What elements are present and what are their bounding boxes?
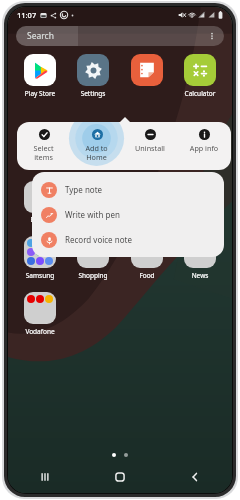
button[interactable]: [121, 53, 173, 98]
button[interactable]: App info: [177, 122, 231, 170]
button[interactable]: Home: [82, 465, 157, 489]
button[interactable]: Settings: [67, 53, 119, 98]
staticText: Record voice note: [65, 234, 132, 245]
staticText: Vodafone: [14, 327, 66, 336]
staticText: Search: [27, 30, 54, 42]
button[interactable]: Write with pen: [32, 202, 224, 227]
button[interactable]: More options: [207, 31, 217, 41]
staticText: Uninstall: [123, 143, 177, 153]
button[interactable]: Google: [174, 181, 226, 224]
button[interactable]: Select items: [17, 122, 70, 170]
staticText: Settings: [67, 89, 119, 98]
staticText: App info: [177, 143, 231, 153]
button[interactable]: Type note: [32, 177, 224, 202]
staticText: 11:07: [17, 10, 37, 20]
staticText: Write with pen: [65, 209, 120, 220]
button[interactable]: Shopping: [67, 234, 119, 280]
button[interactable]: 1: [174, 234, 226, 280]
staticText: Samsung: [14, 271, 66, 280]
staticText: Play Store: [14, 89, 66, 98]
button[interactable]: Add to Home: [70, 122, 123, 170]
staticText: Basics: [14, 215, 66, 224]
button[interactable]: Play Store: [14, 53, 66, 98]
staticText: Shopping: [67, 271, 119, 280]
staticText: Google: [174, 215, 226, 224]
button[interactable]: Search: [16, 26, 224, 46]
button[interactable]: Uninstall: [123, 122, 177, 170]
button[interactable]: Calculator: [174, 53, 226, 98]
button[interactable]: Vodafone: [14, 290, 66, 336]
button[interactable]: Record voice note: [32, 227, 224, 252]
button[interactable]: Food: [121, 234, 173, 280]
button[interactable]: Back: [157, 465, 232, 489]
staticText: Type note: [65, 184, 103, 195]
staticText: Calculator: [174, 89, 226, 98]
button[interactable]: Samsung: [14, 234, 66, 280]
staticText: Travel: [67, 215, 119, 224]
staticText: Food: [121, 271, 173, 280]
staticText: Add to Home: [70, 143, 123, 162]
button[interactable]: Travel: [67, 181, 119, 224]
staticText: Select items: [17, 143, 70, 162]
button[interactable]: Basics: [14, 181, 66, 224]
staticText: News: [174, 271, 226, 280]
button[interactable]: Recents: [8, 465, 82, 489]
